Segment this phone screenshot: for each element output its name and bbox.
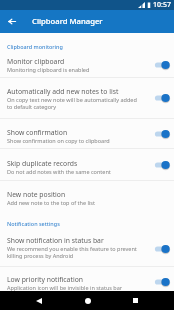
staticText: Show confirmation on copy to clipboard <box>7 137 110 144</box>
staticText: Notification settings <box>7 220 60 227</box>
staticText: to default category <box>7 103 57 110</box>
staticText: killing process by Android <box>7 252 74 259</box>
button[interactable]: Toggle <box>153 127 171 141</box>
staticText: Application icon will be invisible in st… <box>7 284 123 291</box>
staticText: Low priority notification <box>7 275 83 284</box>
button[interactable]: Monitor clipboard <box>0 53 174 77</box>
staticText: Show confirmation <box>7 128 68 137</box>
staticText: On copy text new note will be automatica… <box>7 96 137 103</box>
staticText: Clipboard monitoring <box>7 43 63 50</box>
button[interactable]: Show confirmation <box>0 119 174 148</box>
staticText: Do not add notes with the same content <box>7 168 111 175</box>
button[interactable]: Skip duplicate records <box>0 149 174 180</box>
staticText: 10:57 <box>153 0 171 10</box>
staticText: Monitoring clipboard is enabled <box>7 66 90 73</box>
staticText: Skip duplicate records <box>7 159 78 168</box>
button[interactable]: Automatically add new notes to list <box>0 78 174 118</box>
button[interactable]: Show notification in status bar <box>0 232 174 266</box>
button[interactable]: Toggle <box>153 158 171 172</box>
staticText: Clipboard Manager <box>32 16 103 26</box>
button[interactable]: Toggle <box>153 91 171 105</box>
button[interactable]: Low priority notification <box>0 267 174 297</box>
button[interactable]: Back <box>29 291 48 310</box>
button[interactable]: Toggle <box>153 242 171 256</box>
button[interactable]: Toggle <box>153 58 171 72</box>
staticText: Add new note to the top of the list <box>7 199 95 206</box>
button[interactable]: Navigate up <box>0 10 23 33</box>
staticText: Show notification in status bar <box>7 236 104 245</box>
button[interactable]: Home <box>78 291 97 310</box>
staticText: We recommend you enable this feature to … <box>7 245 137 252</box>
button[interactable]: Toggle <box>153 275 171 289</box>
staticText: Automatically add new notes to list <box>7 87 119 96</box>
button[interactable]: Recent apps <box>126 291 145 310</box>
staticText: Monitor clipboard <box>7 57 65 66</box>
staticText: New note position <box>7 190 66 199</box>
button[interactable]: New note position <box>0 181 174 211</box>
